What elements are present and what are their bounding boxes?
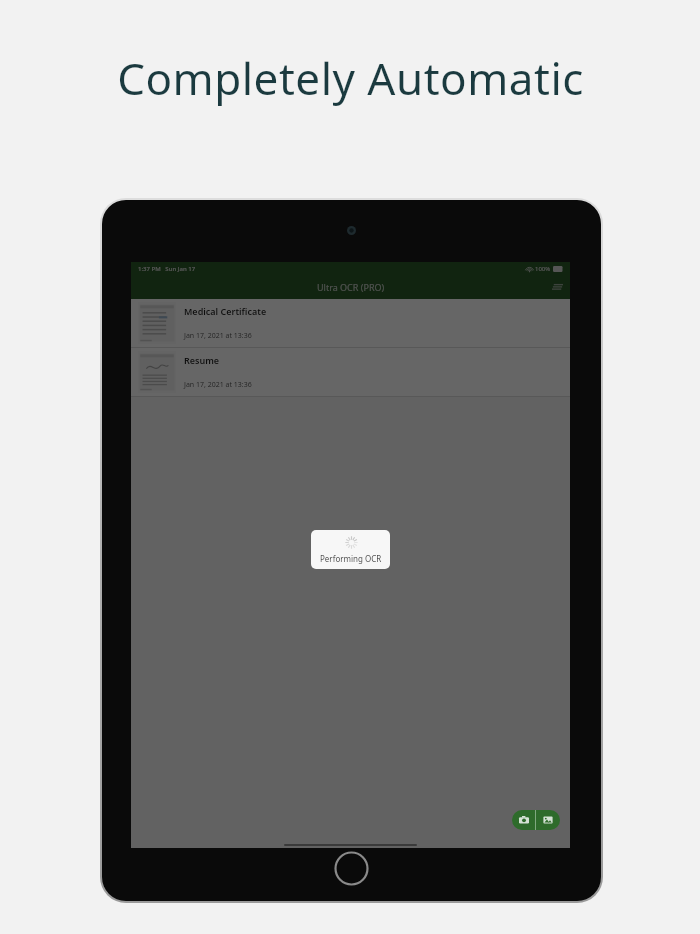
button[interactable]: Camera — [512, 810, 535, 830]
staticText: Resume — [184, 354, 220, 366]
staticText: 100% — [535, 265, 551, 273]
staticText: Ultra OCR (PRO) — [317, 281, 385, 293]
staticText: 1:37 PM Sun Jan 17 — [138, 265, 196, 273]
staticText: Medical Certificate — [184, 305, 267, 317]
staticText: Jan 17, 2021 at 13:36 — [184, 380, 252, 390]
button[interactable]: Medical Certificate — [131, 299, 570, 347]
button[interactable]: Gallery — [536, 810, 560, 830]
button[interactable]: Menu — [549, 279, 565, 295]
staticText: Jan 17, 2021 at 13:36 — [184, 331, 252, 341]
button[interactable]: Resume — [131, 348, 570, 396]
staticText: Completely Automatic — [117, 48, 584, 108]
staticText: Performing OCR — [320, 553, 382, 564]
